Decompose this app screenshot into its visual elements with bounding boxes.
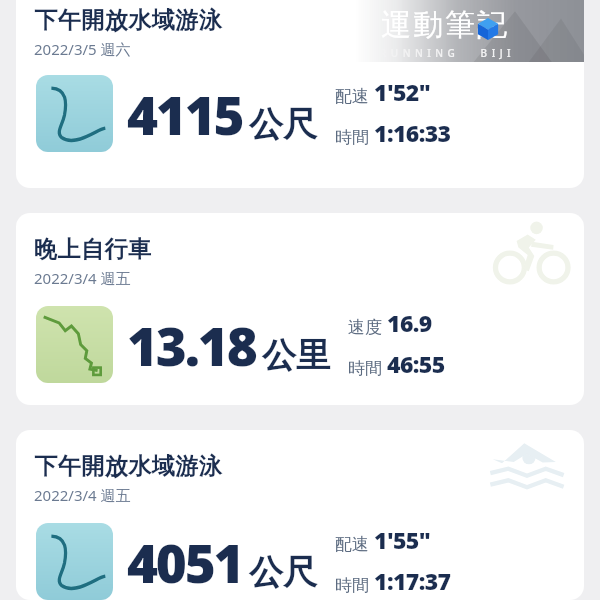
staticText: 2022/3/4 週五	[34, 485, 131, 505]
staticText: 配速	[335, 86, 369, 107]
button[interactable]: 下午開放水域游泳	[16, 430, 584, 600]
staticText: 晚上自行車	[34, 235, 152, 264]
staticText: 4115	[127, 78, 243, 150]
staticText: 運動筆記	[380, 6, 508, 44]
staticText: 2022/3/4 週五	[34, 268, 131, 288]
staticText: 速度	[348, 317, 382, 338]
staticText: RUNNING BIJI	[380, 46, 516, 60]
staticText: 下午開放水域游泳	[34, 452, 222, 481]
staticText: 46:55	[387, 348, 445, 379]
button[interactable]: 晚上自行車	[16, 213, 584, 405]
staticText: 公尺	[249, 103, 317, 146]
staticText: 時間	[335, 575, 369, 596]
staticText: 時間	[335, 127, 369, 148]
button[interactable]: 下午開放水域游泳	[16, 0, 584, 188]
staticText: 時間	[348, 358, 382, 379]
staticText: 公尺	[249, 551, 317, 594]
staticText: 13.18	[127, 309, 256, 381]
staticText: 公里	[262, 334, 330, 377]
staticText: 2022/3/5 週六	[34, 39, 131, 59]
staticText: 4051	[127, 526, 243, 598]
staticText: 16.9	[387, 307, 432, 338]
staticText: 1'52"	[374, 76, 431, 107]
staticText: 配速	[335, 534, 369, 555]
staticText: 1'55"	[374, 524, 431, 555]
staticText: 1:17:37	[374, 565, 451, 596]
staticText: 下午開放水域游泳	[34, 6, 222, 35]
staticText: 1:16:33	[374, 117, 451, 148]
